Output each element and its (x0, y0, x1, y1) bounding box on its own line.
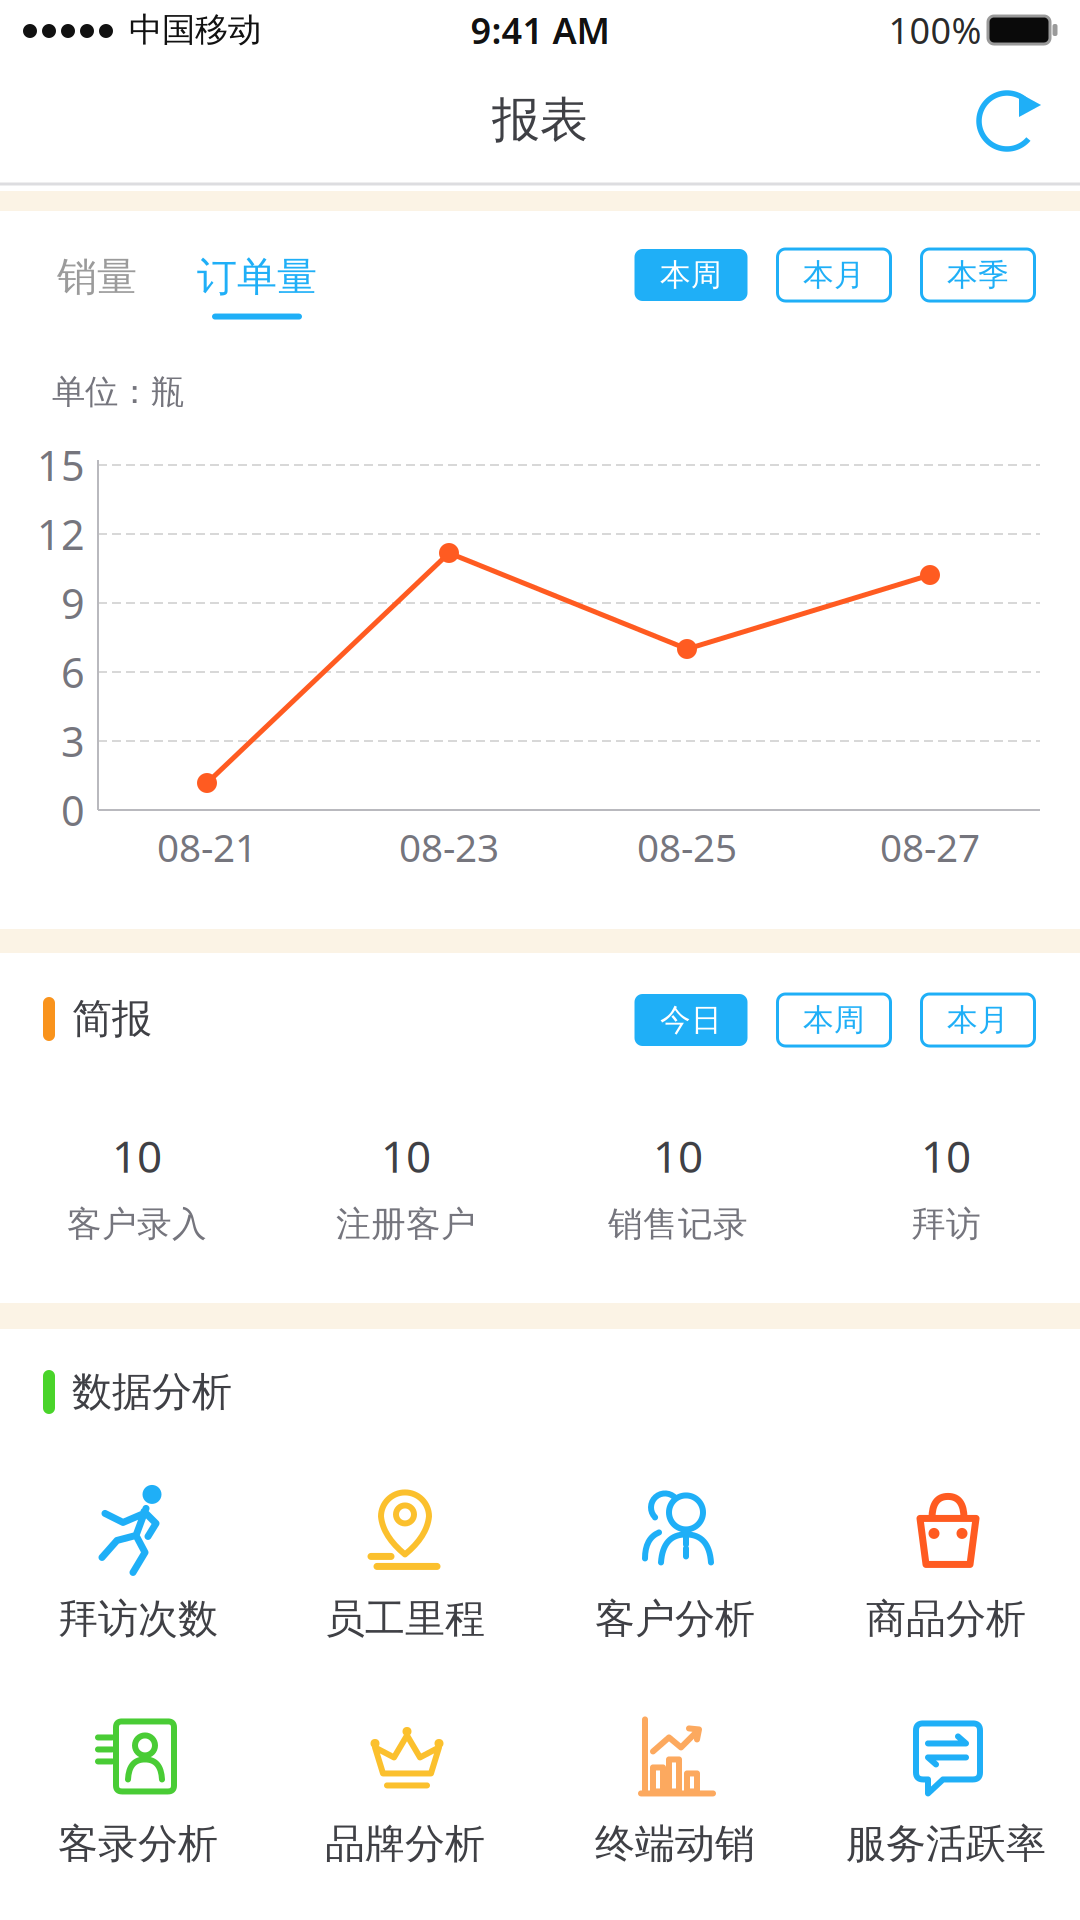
staticText: 拜访次数 (58, 1594, 218, 1643)
staticText: 销售记录 (608, 1203, 748, 1245)
staticText: 本月 (803, 256, 865, 294)
staticText: 报表 (492, 90, 588, 149)
staticText: 终端动销 (595, 1819, 755, 1868)
staticText: 0 (61, 783, 85, 837)
staticText: 客户录入 (67, 1203, 207, 1245)
staticText: 商品分析 (866, 1594, 1026, 1643)
staticText: 10 (381, 1126, 431, 1185)
button[interactable]: 本季 (921, 249, 1034, 301)
button[interactable]: 拜访次数 (58, 1480, 218, 1643)
button[interactable]: 服务活跃率 (846, 1705, 1046, 1868)
staticText: 10 (112, 1126, 162, 1185)
staticText: 拜访 (911, 1203, 981, 1245)
staticText: 3 (61, 714, 85, 768)
staticText: 简报 (72, 994, 152, 1043)
button[interactable]: 商品分析 (866, 1480, 1026, 1643)
button[interactable]: 销量 (57, 252, 137, 301)
staticText: 注册客户 (336, 1203, 476, 1245)
staticText: 订单量 (197, 252, 317, 301)
staticText: 员工里程 (325, 1594, 485, 1643)
button[interactable]: 品牌分析 (325, 1705, 485, 1868)
staticText: 中国移动 (129, 9, 261, 50)
staticText: 服务活跃率 (846, 1819, 1046, 1868)
staticText: 品牌分析 (325, 1819, 485, 1868)
staticText: 客录分析 (58, 1819, 218, 1868)
button[interactable]: 终端动销 (595, 1705, 755, 1868)
button[interactable]: 本周 (634, 249, 747, 301)
staticText: 本周 (660, 256, 722, 294)
staticText: 今日 (660, 1001, 722, 1039)
staticText: 销量 (57, 252, 137, 301)
button[interactable]: 今日 (634, 994, 747, 1046)
button[interactable]: 本月 (777, 249, 890, 301)
button[interactable]: 员工里程 (325, 1480, 485, 1643)
button[interactable]: 本月 (921, 994, 1034, 1046)
staticText: 08-23 (399, 821, 499, 873)
staticText: 08-21 (157, 821, 257, 873)
staticText: 100% (888, 6, 981, 54)
staticText: 6 (61, 645, 85, 699)
staticText: 9:41 AM (470, 6, 609, 54)
staticText: 15 (37, 438, 85, 492)
button[interactable]: 客户分析 (595, 1480, 755, 1643)
staticText: 本季 (947, 256, 1009, 294)
staticText: 10 (653, 1126, 703, 1185)
staticText: 数据分析 (72, 1367, 232, 1416)
staticText: 9 (61, 576, 85, 630)
staticText: 10 (921, 1126, 971, 1185)
staticText: 本周 (803, 1001, 865, 1039)
button[interactable]: 本周 (777, 994, 890, 1046)
button[interactable]: 客录分析 (58, 1705, 218, 1868)
button[interactable]: 刷新 (975, 89, 1039, 153)
button[interactable]: 订单量 (197, 252, 317, 319)
staticText: 本月 (947, 1001, 1009, 1039)
staticText: 08-25 (637, 821, 737, 873)
staticText: 客户分析 (595, 1594, 755, 1643)
staticText: 单位：瓶 (52, 371, 184, 412)
staticText: 08-27 (880, 821, 980, 873)
staticText: 12 (37, 507, 85, 561)
